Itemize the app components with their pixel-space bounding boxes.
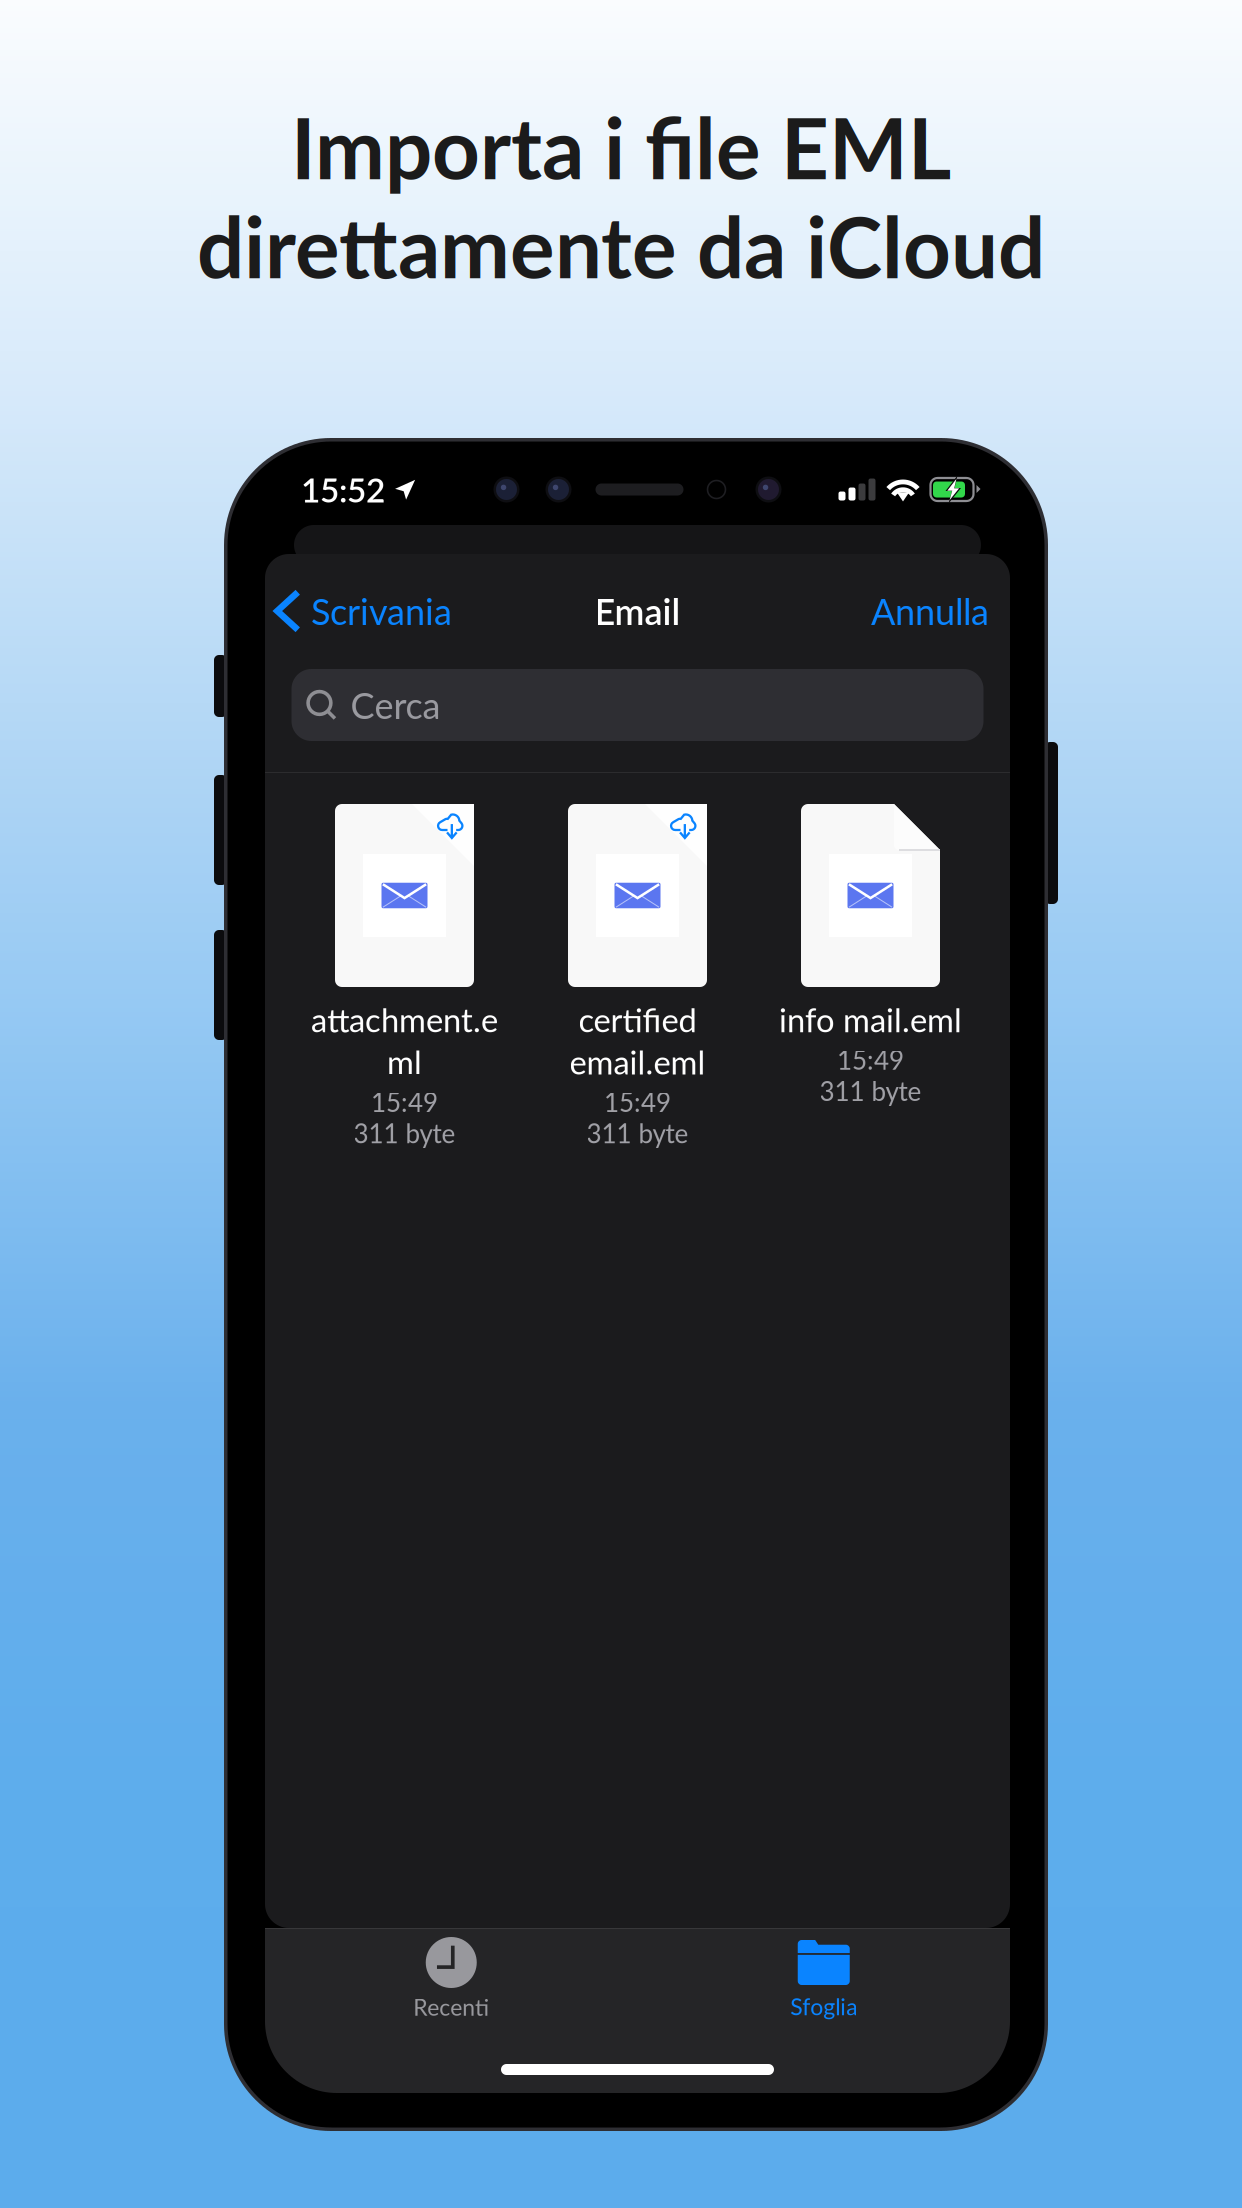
staticText: 311 byte bbox=[586, 1118, 688, 1149]
button[interactable]: certified bbox=[521, 804, 754, 1350]
button[interactable]: attachment.e bbox=[288, 804, 521, 1350]
staticText: Email bbox=[594, 589, 680, 633]
staticText: 15:49 bbox=[371, 1086, 438, 1118]
staticText: certified bbox=[578, 1000, 696, 1039]
staticText: email.eml bbox=[569, 1042, 705, 1081]
staticText: Cerca bbox=[350, 683, 440, 727]
staticText: 15:49 bbox=[837, 1044, 904, 1075]
staticText: direttamente da iCloud bbox=[197, 196, 1045, 296]
staticText: Sfoglia bbox=[790, 1992, 857, 2020]
staticText: Scrivania bbox=[311, 589, 452, 633]
staticText: 15:52 bbox=[301, 469, 385, 509]
staticText: 15:49 bbox=[604, 1086, 671, 1118]
staticText: Recenti bbox=[413, 1993, 489, 2020]
button[interactable]: Recenti bbox=[265, 1929, 637, 2020]
staticText: ml bbox=[387, 1042, 422, 1081]
button[interactable]: Annulla bbox=[871, 576, 1010, 646]
button[interactable]: info mail.eml bbox=[754, 804, 987, 1350]
staticText: Annulla bbox=[871, 589, 989, 633]
staticText: Importa i file EML bbox=[291, 97, 951, 197]
staticText: 311 byte bbox=[819, 1075, 921, 1107]
staticText: info mail.eml bbox=[779, 1000, 962, 1039]
staticText: attachment.e bbox=[311, 1000, 498, 1039]
staticText: 311 byte bbox=[353, 1118, 455, 1149]
button[interactable]: Scrivania bbox=[265, 576, 452, 646]
button[interactable]: Sfoglia bbox=[637, 1929, 1010, 2020]
